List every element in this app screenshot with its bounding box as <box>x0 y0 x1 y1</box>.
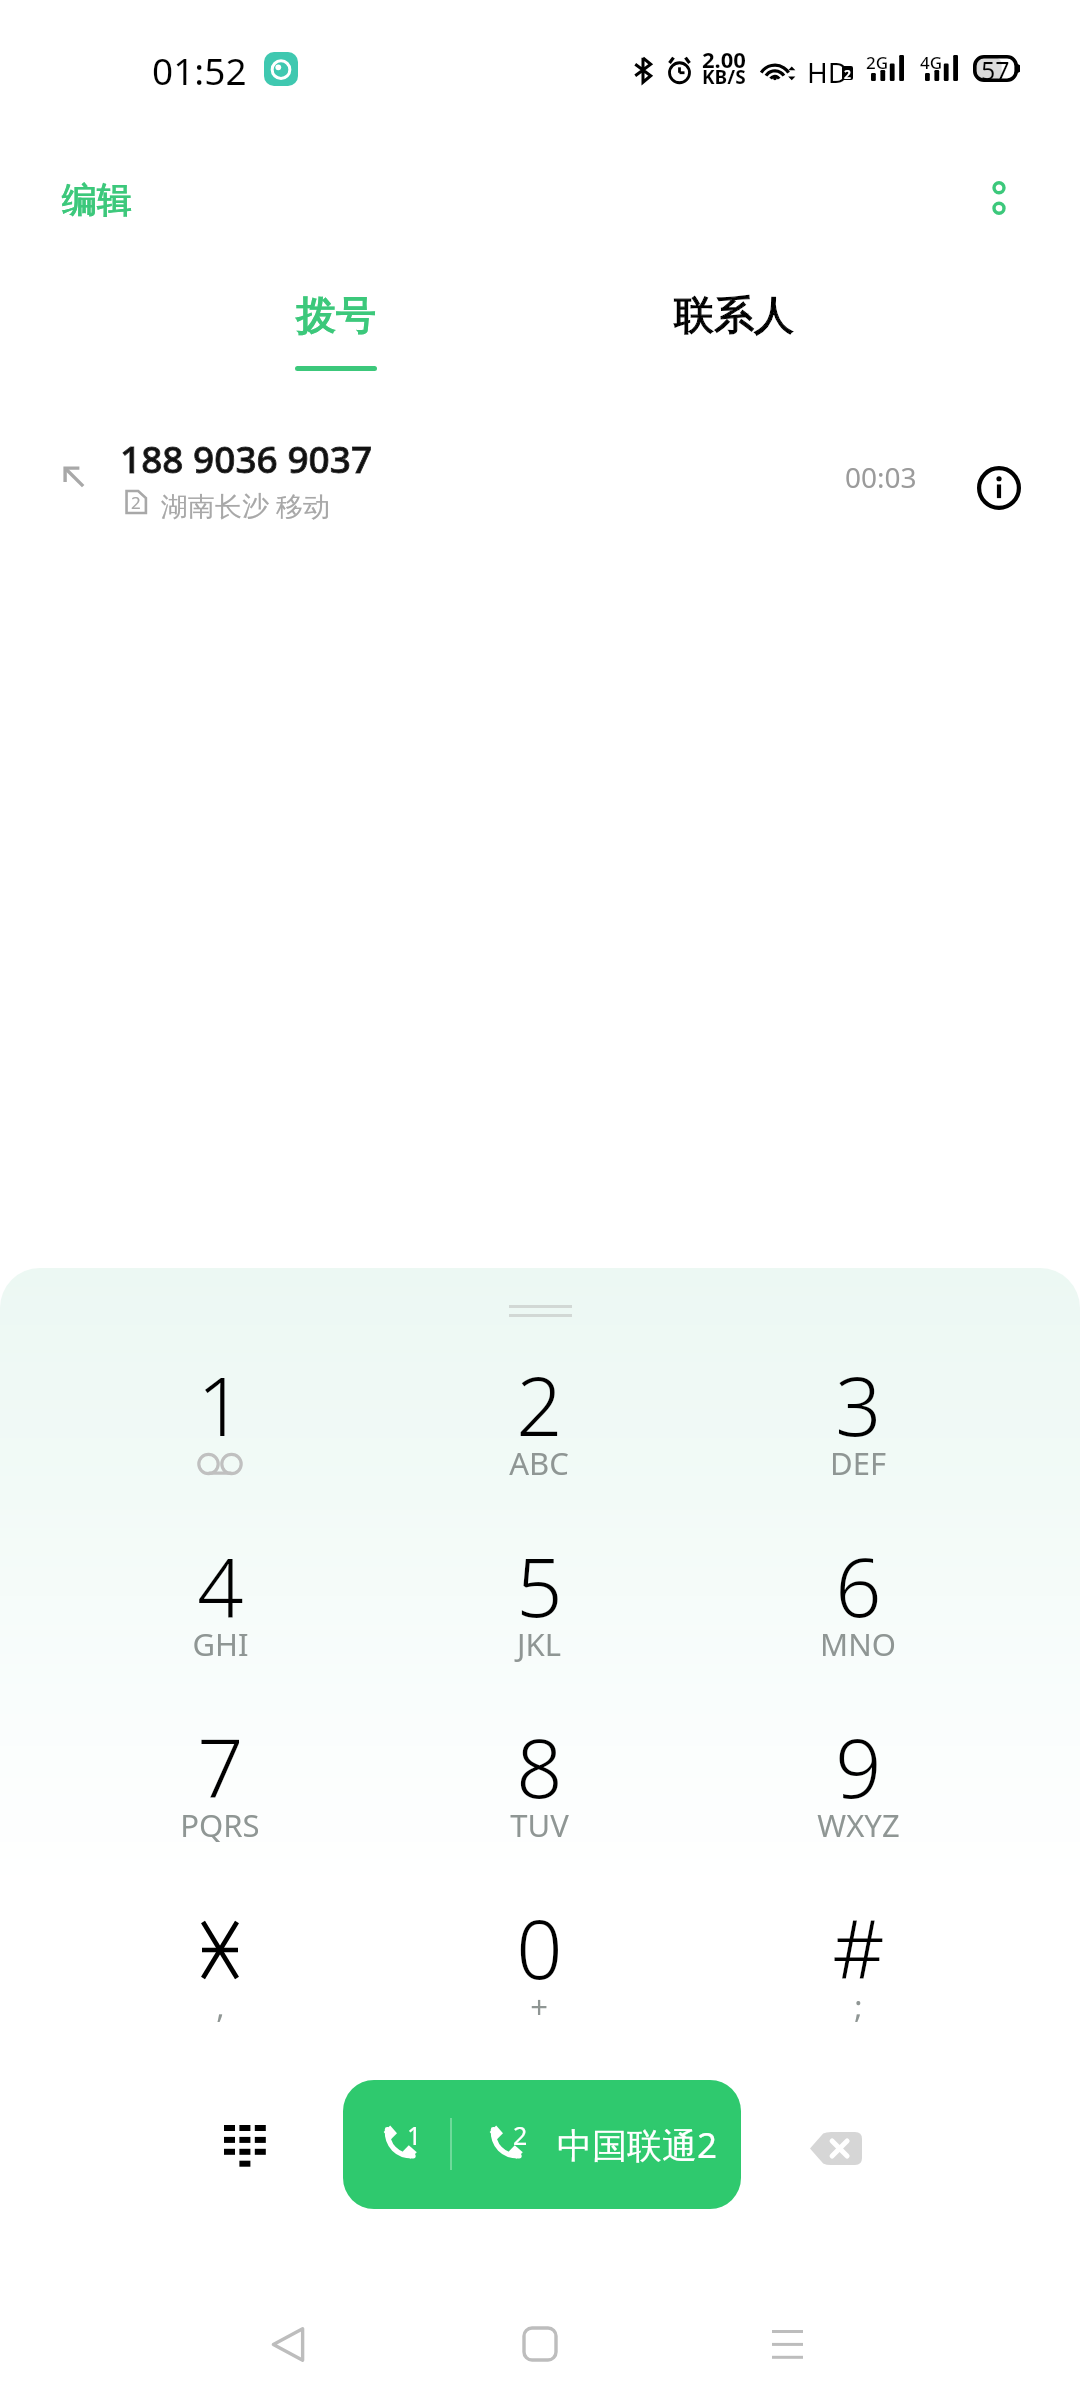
button[interactable]: 1 <box>343 2080 741 2209</box>
staticText: 8 <box>516 1711 563 1821</box>
staticText: , <box>216 1985 225 2027</box>
staticText: 1 <box>407 2118 422 2152</box>
staticText: JKL <box>517 1623 561 1665</box>
staticText: 0 <box>516 1892 563 2002</box>
staticText: 4 <box>197 1530 244 1640</box>
staticText: 2G <box>866 51 889 74</box>
staticText: GHI <box>192 1623 249 1665</box>
staticText: # <box>832 1892 885 2002</box>
staticText: HD <box>807 53 849 91</box>
button[interactable] <box>399 1334 679 1502</box>
staticText: 188 9036 9037 <box>120 433 373 483</box>
staticText: 中国联通2 <box>557 2121 718 2169</box>
button[interactable]: Home <box>498 2302 582 2386</box>
staticText: PQRS <box>180 1804 260 1846</box>
button[interactable] <box>80 1334 360 1502</box>
button[interactable]: 编辑 <box>40 156 154 244</box>
button[interactable]: 188 9036 9037 <box>0 412 1080 544</box>
staticText: 编辑 <box>62 178 132 222</box>
staticText: 4G <box>920 51 943 74</box>
staticText: DEF <box>830 1442 886 1484</box>
staticText: + <box>530 1985 548 2027</box>
button[interactable] <box>718 1515 998 1683</box>
staticText: MNO <box>820 1623 896 1665</box>
staticText: 9 <box>835 1711 882 1821</box>
button[interactable]: Delete <box>793 2106 877 2190</box>
button[interactable] <box>718 1696 998 1864</box>
button[interactable]: Hide keypad <box>203 2104 287 2188</box>
staticText: 拨号 <box>296 290 376 340</box>
staticText: 2 <box>516 1349 563 1459</box>
staticText: 2 <box>131 491 141 514</box>
staticText: 湖南长沙 移动 <box>161 487 331 524</box>
button[interactable] <box>399 1877 679 2045</box>
staticText: WXYZ <box>817 1804 900 1846</box>
button[interactable]: 拨号 <box>216 268 456 386</box>
staticText: TUV <box>510 1804 569 1846</box>
button[interactable]: More options <box>951 150 1047 246</box>
staticText: 01:52 <box>152 45 247 95</box>
staticText: 1 <box>197 1349 244 1459</box>
staticText: 57 <box>981 53 1010 80</box>
button[interactable] <box>718 1877 998 2045</box>
button[interactable]: Recents <box>745 2302 829 2386</box>
staticText: KB/S <box>702 64 746 90</box>
button[interactable]: 联系人 <box>614 268 854 386</box>
staticText: 188 9036 9037 <box>120 433 373 483</box>
staticText: 7 <box>197 1711 244 1821</box>
button[interactable] <box>80 1696 360 1864</box>
button[interactable] <box>718 1334 998 1502</box>
button[interactable]: Call details <box>959 448 1039 528</box>
button[interactable] <box>399 1515 679 1683</box>
button[interactable] <box>80 1877 360 2045</box>
staticText: 00:03 <box>845 458 917 496</box>
staticText: 编辑 <box>62 178 132 222</box>
button[interactable] <box>399 1696 679 1864</box>
staticText: 3 <box>835 1349 882 1459</box>
staticText: 2 <box>844 66 851 80</box>
staticText: 联系人 <box>674 290 794 340</box>
staticText: 2.00 <box>702 44 746 74</box>
button[interactable]: Back <box>246 2302 330 2386</box>
staticText: 5 <box>516 1530 563 1640</box>
staticText: 拨号 <box>296 290 376 340</box>
staticText: 6 <box>835 1530 882 1640</box>
staticText: 2 <box>513 2118 528 2152</box>
staticText: 联系人 <box>674 290 794 340</box>
button[interactable] <box>80 1515 360 1683</box>
staticText: ; <box>854 1985 863 2027</box>
staticText: ABC <box>509 1442 569 1484</box>
